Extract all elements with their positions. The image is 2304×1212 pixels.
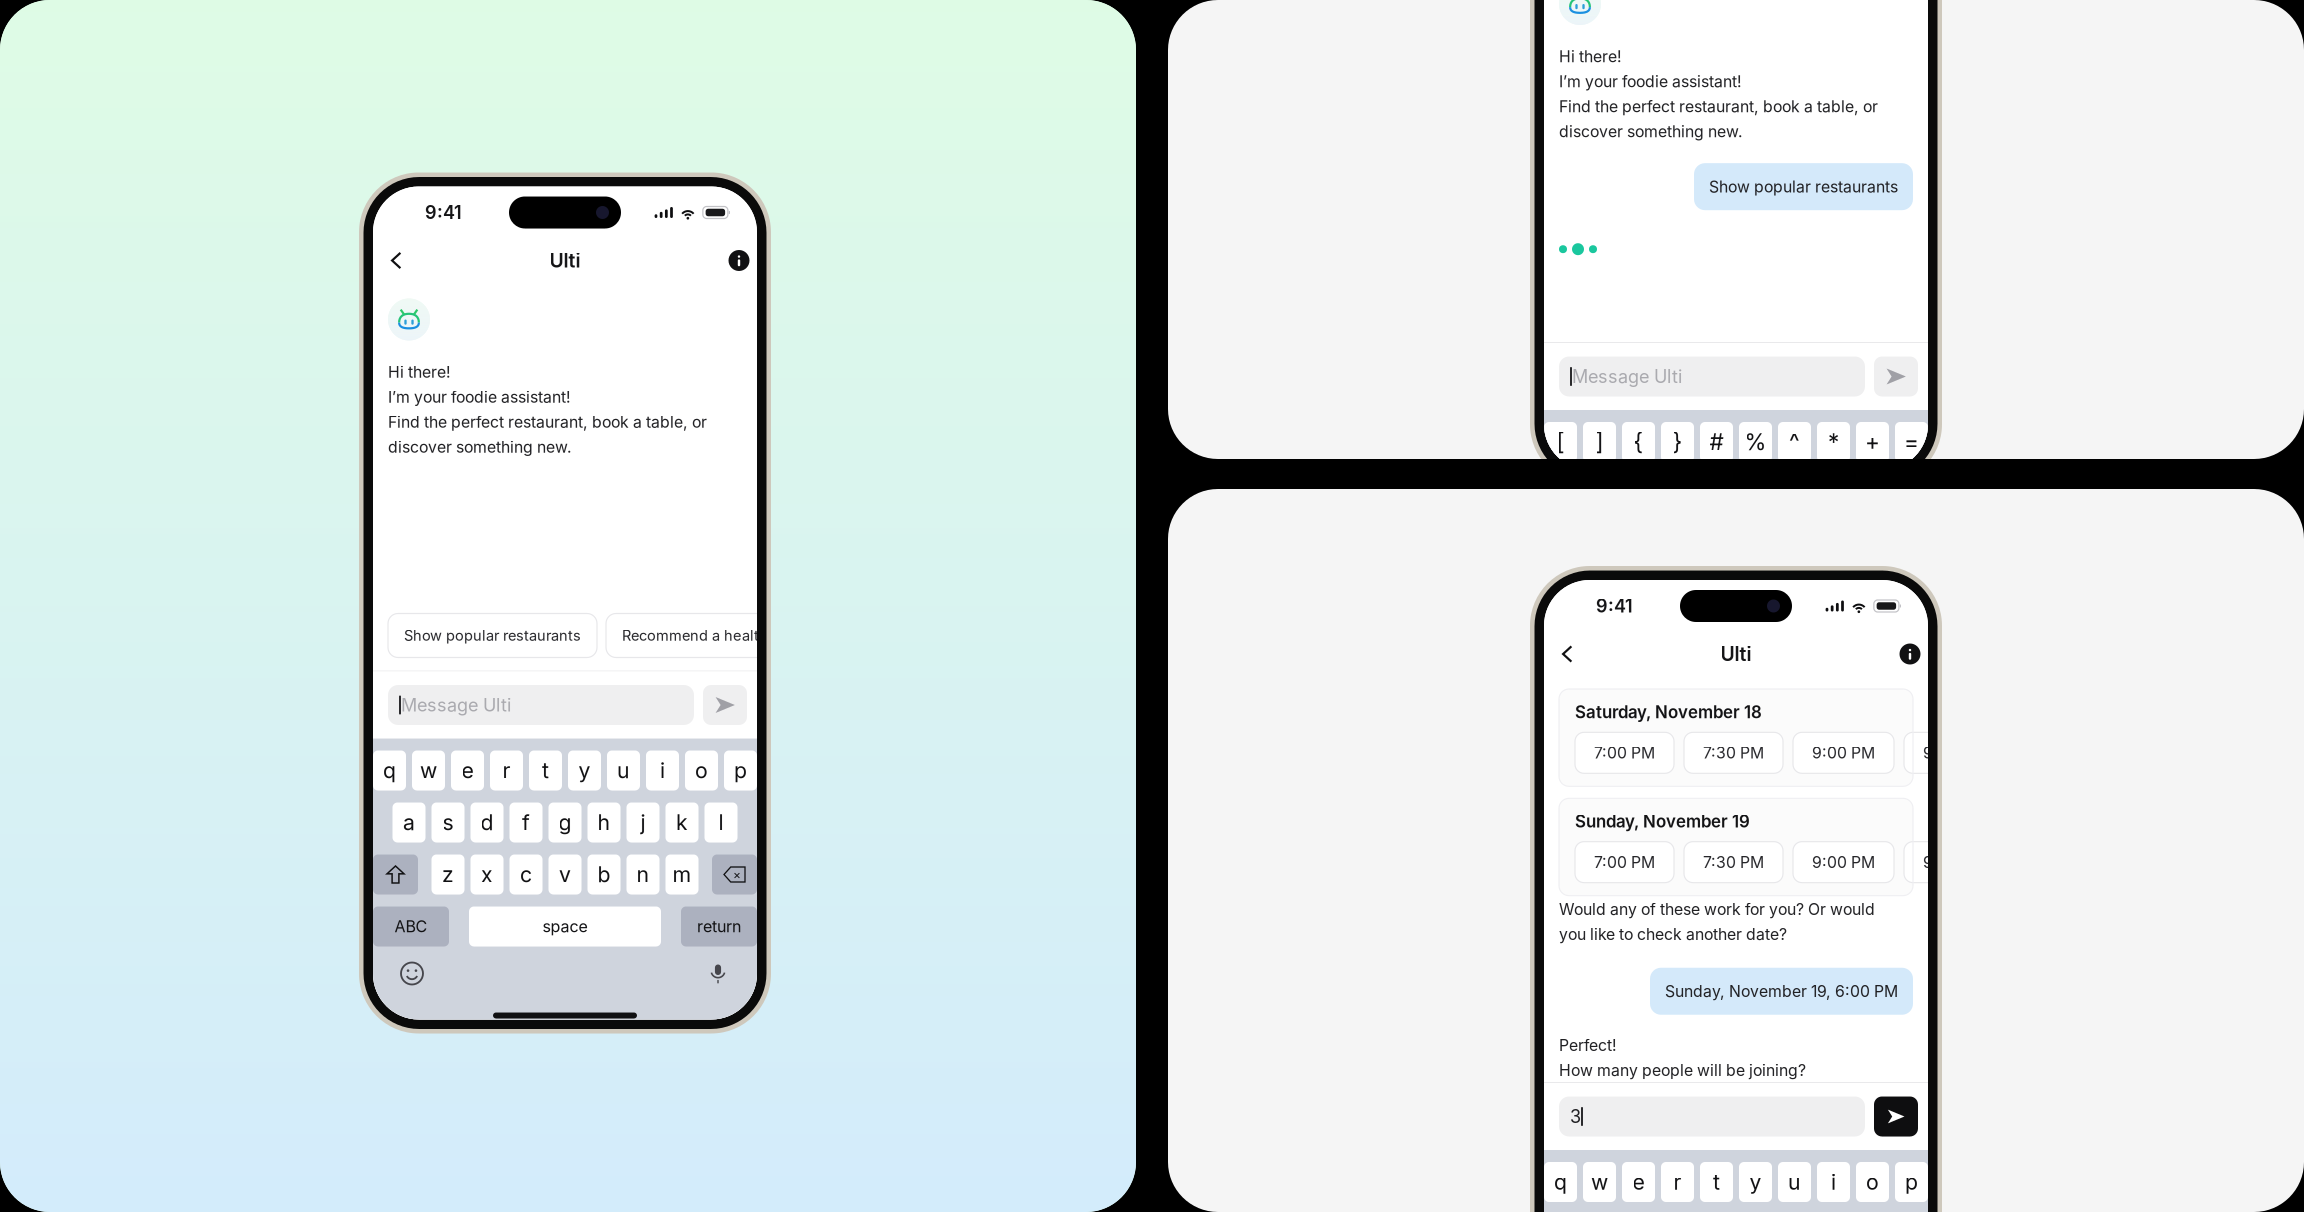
staticText: 9:41 xyxy=(1596,595,1633,617)
staticText: y xyxy=(1749,1169,1761,1195)
button[interactable]: Emoji keyboard xyxy=(393,958,431,988)
button[interactable]: 7:30 PM xyxy=(1684,842,1783,883)
button[interactable]: + xyxy=(1856,422,1889,462)
button[interactable]: v xyxy=(548,854,581,894)
staticText: Recommend a healthy spot xyxy=(622,627,810,644)
button[interactable]: g xyxy=(548,802,581,842)
button[interactable]: a xyxy=(392,802,425,842)
button[interactable]: 9:30 PM xyxy=(1904,842,2005,883)
button[interactable]: Dictation xyxy=(699,958,737,988)
staticText: r xyxy=(502,758,510,783)
button[interactable]: = xyxy=(1895,422,1928,462)
button[interactable]: z xyxy=(431,854,464,894)
staticText: return xyxy=(697,917,741,936)
button[interactable]: b xyxy=(587,854,620,894)
button[interactable]: x xyxy=(470,854,503,894)
staticText: % xyxy=(1744,428,1766,456)
button[interactable]: p xyxy=(724,750,757,790)
button[interactable]: { xyxy=(1622,422,1655,462)
button[interactable]: u xyxy=(1778,1162,1811,1202)
button[interactable]: u xyxy=(607,750,640,790)
button[interactable]: Send message xyxy=(1874,356,1918,396)
button[interactable]: t xyxy=(1700,1162,1733,1202)
staticText: space xyxy=(542,917,587,936)
button[interactable]: Back xyxy=(378,241,416,279)
button[interactable]: 9:00 PM xyxy=(1793,732,1894,773)
button[interactable]: Recommend a healthy spot xyxy=(606,613,826,657)
staticText: Ulti xyxy=(1720,642,1751,666)
button[interactable]: Show popular restaurants xyxy=(388,613,597,657)
staticText: Perfect! xyxy=(1559,1036,1617,1055)
button[interactable]: w xyxy=(1583,1162,1616,1202)
button[interactable]: r xyxy=(490,750,523,790)
button[interactable]: # xyxy=(1700,422,1733,462)
button[interactable]: q xyxy=(373,750,406,790)
staticText: u xyxy=(617,758,630,783)
button[interactable]: Send message xyxy=(703,685,747,725)
button[interactable]: 7:00 PM xyxy=(1575,732,1674,773)
staticText: = xyxy=(1904,428,1919,456)
staticText: discover something new. xyxy=(388,438,572,457)
button[interactable]: 7:30 PM xyxy=(1684,732,1783,773)
button[interactable]: ^ xyxy=(1778,422,1811,462)
button[interactable]: n xyxy=(626,854,659,894)
button[interactable]: 9:30 PM xyxy=(1904,732,2005,773)
button[interactable]: Shift xyxy=(373,854,418,894)
button[interactable]: c xyxy=(509,854,542,894)
button[interactable]: * xyxy=(1817,422,1850,462)
button[interactable]: e xyxy=(451,750,484,790)
staticText: h xyxy=(597,810,610,835)
staticText: ^ xyxy=(1789,428,1800,456)
button[interactable]: } xyxy=(1661,422,1694,462)
button[interactable]: [ xyxy=(1544,422,1577,462)
staticText: r xyxy=(1673,1169,1681,1195)
button[interactable]: % xyxy=(1739,422,1772,462)
button[interactable]: s xyxy=(431,802,464,842)
button[interactable]: Delete xyxy=(712,854,757,894)
button[interactable]: i xyxy=(646,750,679,790)
button[interactable]: m xyxy=(665,854,698,894)
button[interactable]: i xyxy=(1817,1162,1850,1202)
staticText: Sunday, November 19, 6:00 PM xyxy=(1665,982,1898,1001)
staticText: you like to check another date? xyxy=(1559,925,1787,944)
button[interactable]: Conversation info xyxy=(1893,635,1927,673)
button[interactable]: ABC xyxy=(373,906,449,946)
staticText: I’m your foodie assistant! xyxy=(388,387,571,406)
button[interactable]: Conversation info xyxy=(722,241,756,279)
button[interactable]: o xyxy=(685,750,718,790)
button[interactable]: Send message xyxy=(1874,1096,1918,1136)
button[interactable]: k xyxy=(665,802,698,842)
button[interactable]: ] xyxy=(1583,422,1616,462)
staticText: a xyxy=(403,810,415,835)
staticText: 9:30 PM xyxy=(1923,853,1986,872)
button[interactable]: r xyxy=(1661,1162,1694,1202)
staticText: 9:30 PM xyxy=(1923,743,1986,762)
staticText: Find the perfect restaurant, book a tabl… xyxy=(388,413,707,432)
button[interactable]: f xyxy=(509,802,542,842)
button[interactable]: 9:00 PM xyxy=(1793,842,1894,883)
button[interactable]: h xyxy=(587,802,620,842)
button[interactable]: l xyxy=(704,802,737,842)
button[interactable]: y xyxy=(1739,1162,1772,1202)
button[interactable]: o xyxy=(1856,1162,1889,1202)
staticText: × xyxy=(733,867,741,882)
button[interactable]: q xyxy=(1544,1162,1577,1202)
staticText: I’m your foodie assistant! xyxy=(1559,72,1742,91)
button[interactable]: 7:00 PM xyxy=(1575,842,1674,883)
staticText: * xyxy=(1828,428,1839,456)
staticText: 9:00 PM xyxy=(1812,853,1875,872)
staticText: i xyxy=(1831,1169,1836,1195)
button[interactable]: j xyxy=(626,802,659,842)
button[interactable]: space xyxy=(469,906,661,946)
staticText: w xyxy=(1591,1169,1608,1195)
button[interactable]: t xyxy=(529,750,562,790)
staticText: 7:00 PM xyxy=(1594,853,1655,872)
button[interactable]: d xyxy=(470,802,503,842)
staticText: y xyxy=(578,758,590,783)
button[interactable]: p xyxy=(1895,1162,1928,1202)
button[interactable]: e xyxy=(1622,1162,1655,1202)
button[interactable]: return xyxy=(681,906,757,946)
button[interactable]: w xyxy=(412,750,445,790)
button[interactable]: Back xyxy=(1549,635,1587,673)
button[interactable]: y xyxy=(568,750,601,790)
